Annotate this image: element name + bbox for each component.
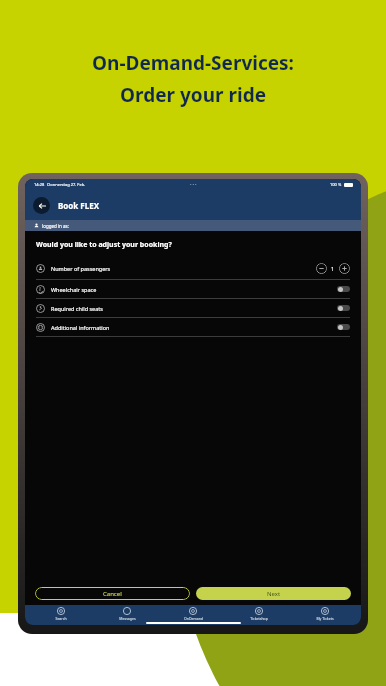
staticText: Book FLEX xyxy=(58,200,100,211)
staticText: • • • xyxy=(190,182,197,187)
button[interactable] xyxy=(337,324,350,330)
staticText: Order your ride xyxy=(120,82,266,108)
staticText: My Tickets xyxy=(316,616,334,621)
staticText: Required child seats xyxy=(51,305,103,312)
button[interactable] xyxy=(337,286,350,292)
staticText: Messages xyxy=(119,616,136,621)
staticText: Cancel xyxy=(103,590,122,598)
staticText: logged in as: xyxy=(42,223,69,229)
staticText: OnDemand xyxy=(184,616,203,621)
button[interactable]: Cancel xyxy=(35,587,190,600)
button[interactable]: Search xyxy=(31,605,91,621)
button[interactable]: OnDemand xyxy=(163,605,223,621)
staticText: Next xyxy=(267,590,281,598)
button[interactable]: Decrease passengers xyxy=(316,263,327,274)
button[interactable]: Back xyxy=(33,197,50,214)
staticText: 14:28 Donnerstag 27. Feb. xyxy=(34,182,86,187)
button[interactable]: My Tickets xyxy=(295,605,355,621)
button[interactable]: Increase passengers xyxy=(339,263,350,274)
button[interactable] xyxy=(337,305,350,311)
staticText: Would you like to adjust your booking? xyxy=(36,240,172,250)
button[interactable]: Required child seats xyxy=(25,299,361,317)
staticText: 1 xyxy=(331,265,335,272)
button[interactable]: Next xyxy=(196,587,351,600)
staticText: Additional information xyxy=(51,324,110,331)
button[interactable]: Number of passengers xyxy=(25,257,361,279)
button[interactable]: Additional information xyxy=(25,318,361,336)
staticText: Ticketshop xyxy=(250,616,268,621)
staticText: Search xyxy=(55,616,67,621)
staticText: 100 % xyxy=(330,182,342,187)
staticText: On-Demand-Services: xyxy=(92,50,294,76)
button[interactable]: Ticketshop xyxy=(229,605,289,621)
staticText: Wheelchair space xyxy=(51,286,97,293)
button[interactable]: Wheelchair space xyxy=(25,280,361,298)
staticText: Number of passengers xyxy=(51,265,111,272)
button[interactable]: Messages xyxy=(97,605,157,621)
